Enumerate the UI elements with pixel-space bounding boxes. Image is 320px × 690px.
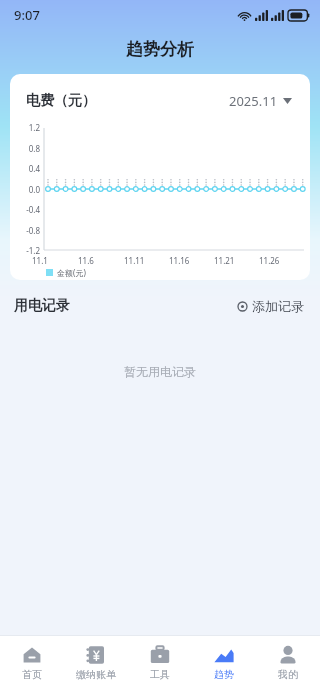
staticText: 首页: [22, 668, 42, 681]
staticText: 0.8: [14, 143, 40, 154]
staticText: 11.11: [124, 255, 169, 266]
button[interactable]: 添加记录: [234, 294, 308, 318]
button[interactable]: 缴纳账单: [64, 640, 128, 686]
staticText: 我的: [278, 668, 298, 681]
button[interactable]: 工具: [128, 640, 192, 686]
staticText: 趋势: [214, 668, 234, 681]
staticText: 电费（元）: [26, 92, 96, 110]
staticText: 0.0: [14, 184, 40, 195]
staticText: 9:07: [14, 6, 40, 24]
staticText: 暂无用电记录: [0, 364, 320, 379]
button[interactable]: 我的: [256, 640, 320, 686]
staticText: 11.6: [78, 255, 124, 266]
staticText: 工具: [150, 668, 170, 681]
staticText: 用电记录: [14, 297, 70, 315]
staticText: 添加记录: [252, 298, 304, 314]
staticText: 11.26: [259, 255, 304, 266]
button[interactable]: 首页: [0, 640, 64, 686]
staticText: -1.2: [14, 245, 40, 256]
staticText: -0.8: [14, 225, 40, 236]
button[interactable]: 2025.11: [225, 88, 296, 114]
staticText: 趋势分析: [126, 39, 194, 60]
button[interactable]: 趋势: [192, 640, 256, 686]
staticText: 11.1: [32, 255, 78, 266]
staticText: 金额(元): [57, 267, 86, 278]
staticText: 11.21: [214, 255, 259, 266]
staticText: 0.4: [14, 163, 40, 174]
staticText: 11.16: [169, 255, 214, 266]
staticText: 1.2: [14, 122, 40, 133]
staticText: 缴纳账单: [76, 668, 116, 681]
staticText: 2025.11: [229, 92, 278, 110]
staticText: -0.4: [14, 204, 40, 215]
